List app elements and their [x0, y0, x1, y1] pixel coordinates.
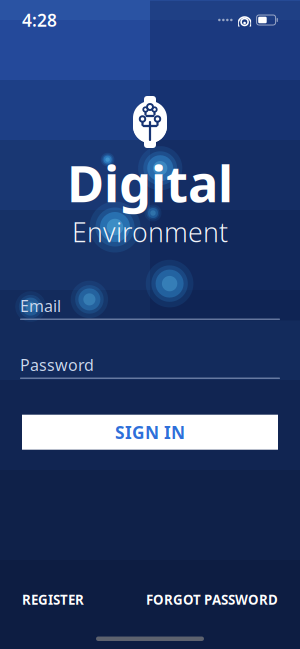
- staticText: Digital: [67, 149, 233, 216]
- staticText: FORGOT PASSWORD: [146, 591, 278, 608]
- staticText: Email: [20, 295, 61, 316]
- staticText: REGISTER: [22, 591, 84, 608]
- staticText: Password: [20, 354, 94, 375]
- button[interactable]: SIGN IN: [22, 415, 278, 450]
- button[interactable]: REGISTER: [22, 585, 94, 614]
- staticText: Environment: [72, 214, 228, 250]
- button[interactable]: Email: [20, 295, 280, 322]
- button[interactable]: Password: [20, 354, 280, 381]
- button[interactable]: FORGOT PASSWORD: [136, 585, 278, 614]
- staticText: 4:28: [22, 8, 57, 31]
- staticText: SIGN IN: [115, 421, 185, 444]
